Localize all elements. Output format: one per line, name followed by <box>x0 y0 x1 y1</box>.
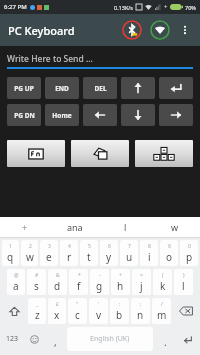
staticText: . <box>164 335 167 349</box>
staticText: 0 <box>188 243 191 250</box>
staticText: g <box>96 279 103 293</box>
button[interactable]: 2 <box>21 240 38 266</box>
button[interactable]: " <box>68 298 87 324</box>
button[interactable]: Arrow right <box>159 104 193 126</box>
button[interactable]: @ <box>7 269 25 295</box>
button[interactable]: . <box>156 327 174 351</box>
button[interactable]: 9 <box>160 240 178 266</box>
staticText: 7 <box>128 243 131 250</box>
button[interactable]: 6 <box>100 240 118 266</box>
staticText: " <box>76 301 79 308</box>
staticText: z <box>35 308 40 322</box>
staticText: a <box>13 279 19 293</box>
staticText: s <box>34 279 39 293</box>
staticText: w <box>26 250 34 264</box>
button[interactable]: Write Here to Send ... <box>7 53 193 69</box>
button[interactable]: English (UK) <box>67 327 153 351</box>
staticText: ; <box>140 301 142 308</box>
staticText: = <box>140 272 143 279</box>
button[interactable]: w <box>150 217 200 237</box>
button[interactable]: PG DN <box>7 104 41 126</box>
button[interactable]: + <box>111 269 130 295</box>
button[interactable]: l <box>100 217 150 237</box>
button[interactable]: 5 <box>80 240 98 266</box>
button[interactable]: Bluetooth disconnected <box>121 19 143 41</box>
button[interactable]: Arrow left <box>83 104 117 126</box>
staticText: 70% <box>185 4 196 11</box>
button[interactable]: , <box>46 327 64 351</box>
button[interactable]: Emoji <box>24 327 45 351</box>
button[interactable]: ( <box>153 269 172 295</box>
staticText: 1 <box>9 243 12 250</box>
staticText: PG UP <box>14 84 34 93</box>
button[interactable]: £ <box>48 298 66 324</box>
button[interactable]: Switch window <box>71 140 129 167</box>
button[interactable]: END <box>45 77 79 99</box>
staticText: END <box>55 84 69 93</box>
staticText: o <box>166 250 173 264</box>
button[interactable]: 4 <box>60 240 78 266</box>
button[interactable]: DEL <box>83 77 117 99</box>
staticText: PC Keyboard <box>8 23 75 38</box>
staticText: PG DN <box>14 111 35 120</box>
staticText: English (UK) <box>90 334 130 344</box>
button[interactable]: 1 <box>2 240 19 266</box>
button[interactable]: 8 <box>140 240 158 266</box>
button[interactable]: : <box>110 298 129 324</box>
staticText: i <box>148 250 151 264</box>
button[interactable]: 0 <box>180 240 198 266</box>
button[interactable]: Arrow keys <box>135 140 193 167</box>
button[interactable]: PG UP <box>7 77 41 99</box>
staticText: - <box>99 272 101 279</box>
button[interactable]: WiFi connected <box>149 19 171 41</box>
button[interactable]: Return <box>175 327 199 351</box>
button[interactable]: # <box>27 269 46 295</box>
staticText: 9 <box>168 243 171 250</box>
staticText: 6 <box>108 243 111 250</box>
button[interactable]: 123 <box>1 327 24 351</box>
button[interactable]: Arrow up <box>121 77 155 99</box>
staticText: m <box>157 308 167 322</box>
staticText: b <box>116 308 123 322</box>
button[interactable]: More options <box>175 20 195 40</box>
staticText: & <box>56 272 60 279</box>
staticText: + <box>22 221 28 233</box>
staticText: e <box>46 250 52 264</box>
button[interactable]: ana <box>50 217 100 237</box>
staticText: 8 <box>148 243 151 250</box>
staticText: £ <box>56 301 59 308</box>
button[interactable]: 7 <box>120 240 138 266</box>
button[interactable]: * <box>69 269 88 295</box>
button[interactable]: _ <box>28 298 46 324</box>
button[interactable]: 3 <box>40 240 58 266</box>
button[interactable]: - <box>90 269 109 295</box>
staticText: ) <box>183 272 185 279</box>
staticText: * <box>78 272 81 279</box>
button[interactable]: / <box>152 298 171 324</box>
staticText: q <box>7 250 14 264</box>
staticText: v <box>96 308 102 322</box>
staticText: x <box>54 308 60 322</box>
button[interactable]: & <box>48 269 67 295</box>
button[interactable]: Function key <box>7 140 65 167</box>
staticText: + <box>164 3 168 11</box>
staticText: # <box>35 272 39 279</box>
staticText: k <box>160 279 166 293</box>
button[interactable]: Backspace <box>172 298 199 324</box>
button[interactable]: Home <box>45 104 79 126</box>
button[interactable]: Shift <box>1 298 27 324</box>
staticText: r <box>67 250 72 264</box>
button[interactable]: = <box>132 269 151 295</box>
staticText: + <box>119 272 122 279</box>
staticText: ( <box>162 272 164 279</box>
button[interactable]: + <box>0 217 50 237</box>
button[interactable]: ' <box>89 298 108 324</box>
staticText: w <box>171 221 179 233</box>
staticText: f <box>77 279 81 293</box>
button[interactable]: ) <box>174 269 193 295</box>
staticText: 0.13K/s <box>114 4 133 11</box>
button[interactable]: Arrow down <box>121 104 155 126</box>
button[interactable]: ; <box>131 298 150 324</box>
staticText: @ <box>14 272 19 279</box>
button[interactable]: Enter <box>159 77 193 99</box>
